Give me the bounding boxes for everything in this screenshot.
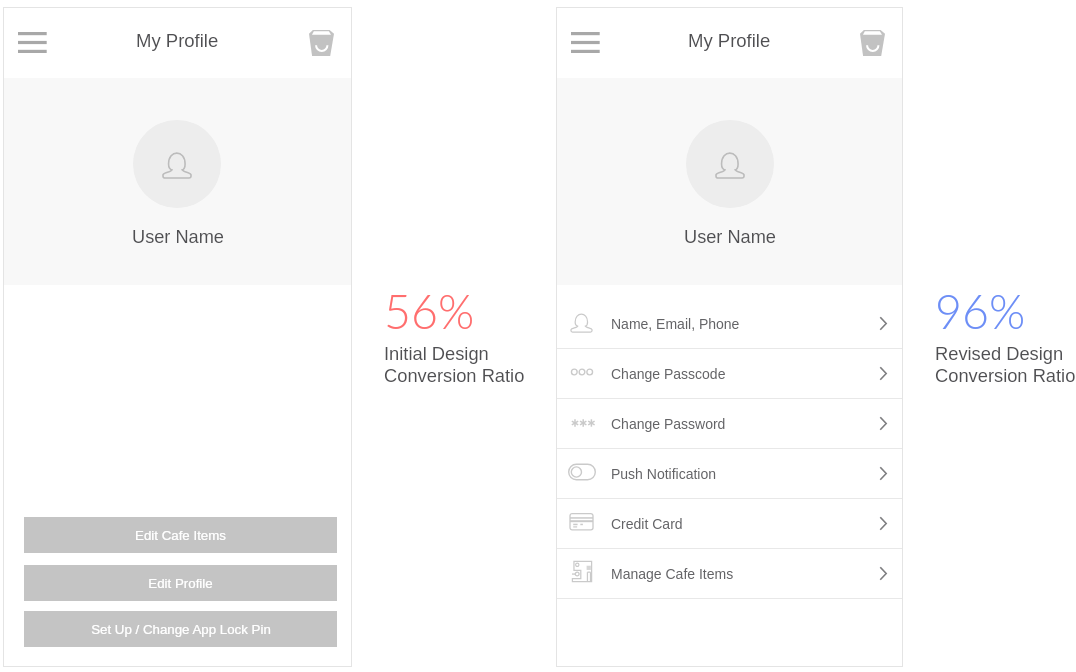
staticText: Change Passcode: [611, 366, 726, 382]
staticText: User Name: [684, 227, 776, 247]
button[interactable]: Set Up / Change App Lock Pin: [24, 611, 337, 647]
staticText: My Profile: [136, 30, 219, 51]
staticText: Revised Design Conversion Ratio: [935, 343, 1076, 386]
staticText: Initial Design Conversion Ratio: [384, 343, 525, 386]
staticText: Edit Profile: [148, 576, 213, 591]
staticText: Credit Card: [611, 516, 683, 532]
button[interactable]: Open navigation menu: [560, 17, 611, 68]
button[interactable]: Change Password: [556, 399, 903, 448]
button[interactable]: Push Notification: [556, 449, 903, 498]
staticText: Push Notification: [611, 466, 717, 482]
staticText: User Name: [132, 227, 224, 247]
button[interactable]: Change Passcode: [556, 349, 903, 398]
staticText: Change Password: [611, 416, 726, 432]
button[interactable]: Edit Profile: [24, 565, 337, 601]
staticText: 56%: [384, 283, 475, 339]
button[interactable]: Manage Cafe Items: [556, 549, 903, 598]
staticText: 96%: [935, 283, 1026, 339]
staticText: Name, Email, Phone: [611, 316, 740, 332]
button[interactable]: Name, Email, Phone: [556, 299, 903, 348]
staticText: Manage Cafe Items: [611, 566, 734, 582]
button[interactable]: Edit Cafe Items: [24, 517, 337, 553]
button[interactable]: Credit Card: [556, 499, 903, 548]
button[interactable]: Open navigation menu: [7, 17, 58, 68]
staticText: Set Up / Change App Lock Pin: [91, 622, 271, 637]
staticText: Edit Cafe Items: [135, 528, 226, 543]
staticText: My Profile: [688, 30, 771, 51]
button[interactable]: Shopping bag: [299, 21, 343, 65]
button[interactable]: Shopping bag: [850, 21, 894, 65]
